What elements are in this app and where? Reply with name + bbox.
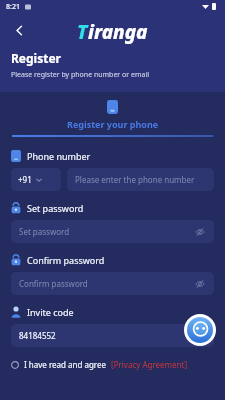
staticText: 84184552 [19, 330, 56, 341]
staticText: Please enter the phone number [75, 174, 195, 185]
staticText: Register [11, 50, 61, 66]
staticText: Confirm password [27, 254, 105, 266]
button[interactable]: Confirm password [11, 272, 214, 295]
button[interactable]: Register your phone [0, 100, 225, 137]
button[interactable]: Set password [11, 220, 214, 243]
staticText: [Privacy Agreement] [111, 359, 188, 370]
button[interactable]: Back [6, 17, 32, 43]
staticText: +91 [18, 174, 32, 185]
staticText: iranga [88, 19, 148, 45]
button[interactable]: Toggle password visibility [193, 277, 206, 290]
staticText: Please register by phone number or email [11, 70, 150, 80]
staticText: 8:21 [6, 2, 20, 12]
button[interactable]: Customer service chat [184, 314, 216, 346]
button[interactable]: +91 [11, 168, 61, 191]
staticText: Set password [19, 226, 70, 237]
staticText: Register your phone [67, 118, 159, 130]
button[interactable]: Toggle password visibility [193, 225, 206, 238]
button[interactable]: Please enter the phone number [67, 168, 214, 191]
button[interactable]: I have read and agree [11, 359, 188, 370]
staticText: Invite code [27, 306, 74, 318]
staticText: I have read and agree [24, 359, 107, 370]
staticText: Phone number [27, 150, 91, 162]
staticText: Set password [27, 202, 84, 214]
staticText: T [77, 19, 88, 45]
button[interactable]: 84184552 [11, 324, 214, 347]
staticText: Confirm password [19, 278, 88, 289]
